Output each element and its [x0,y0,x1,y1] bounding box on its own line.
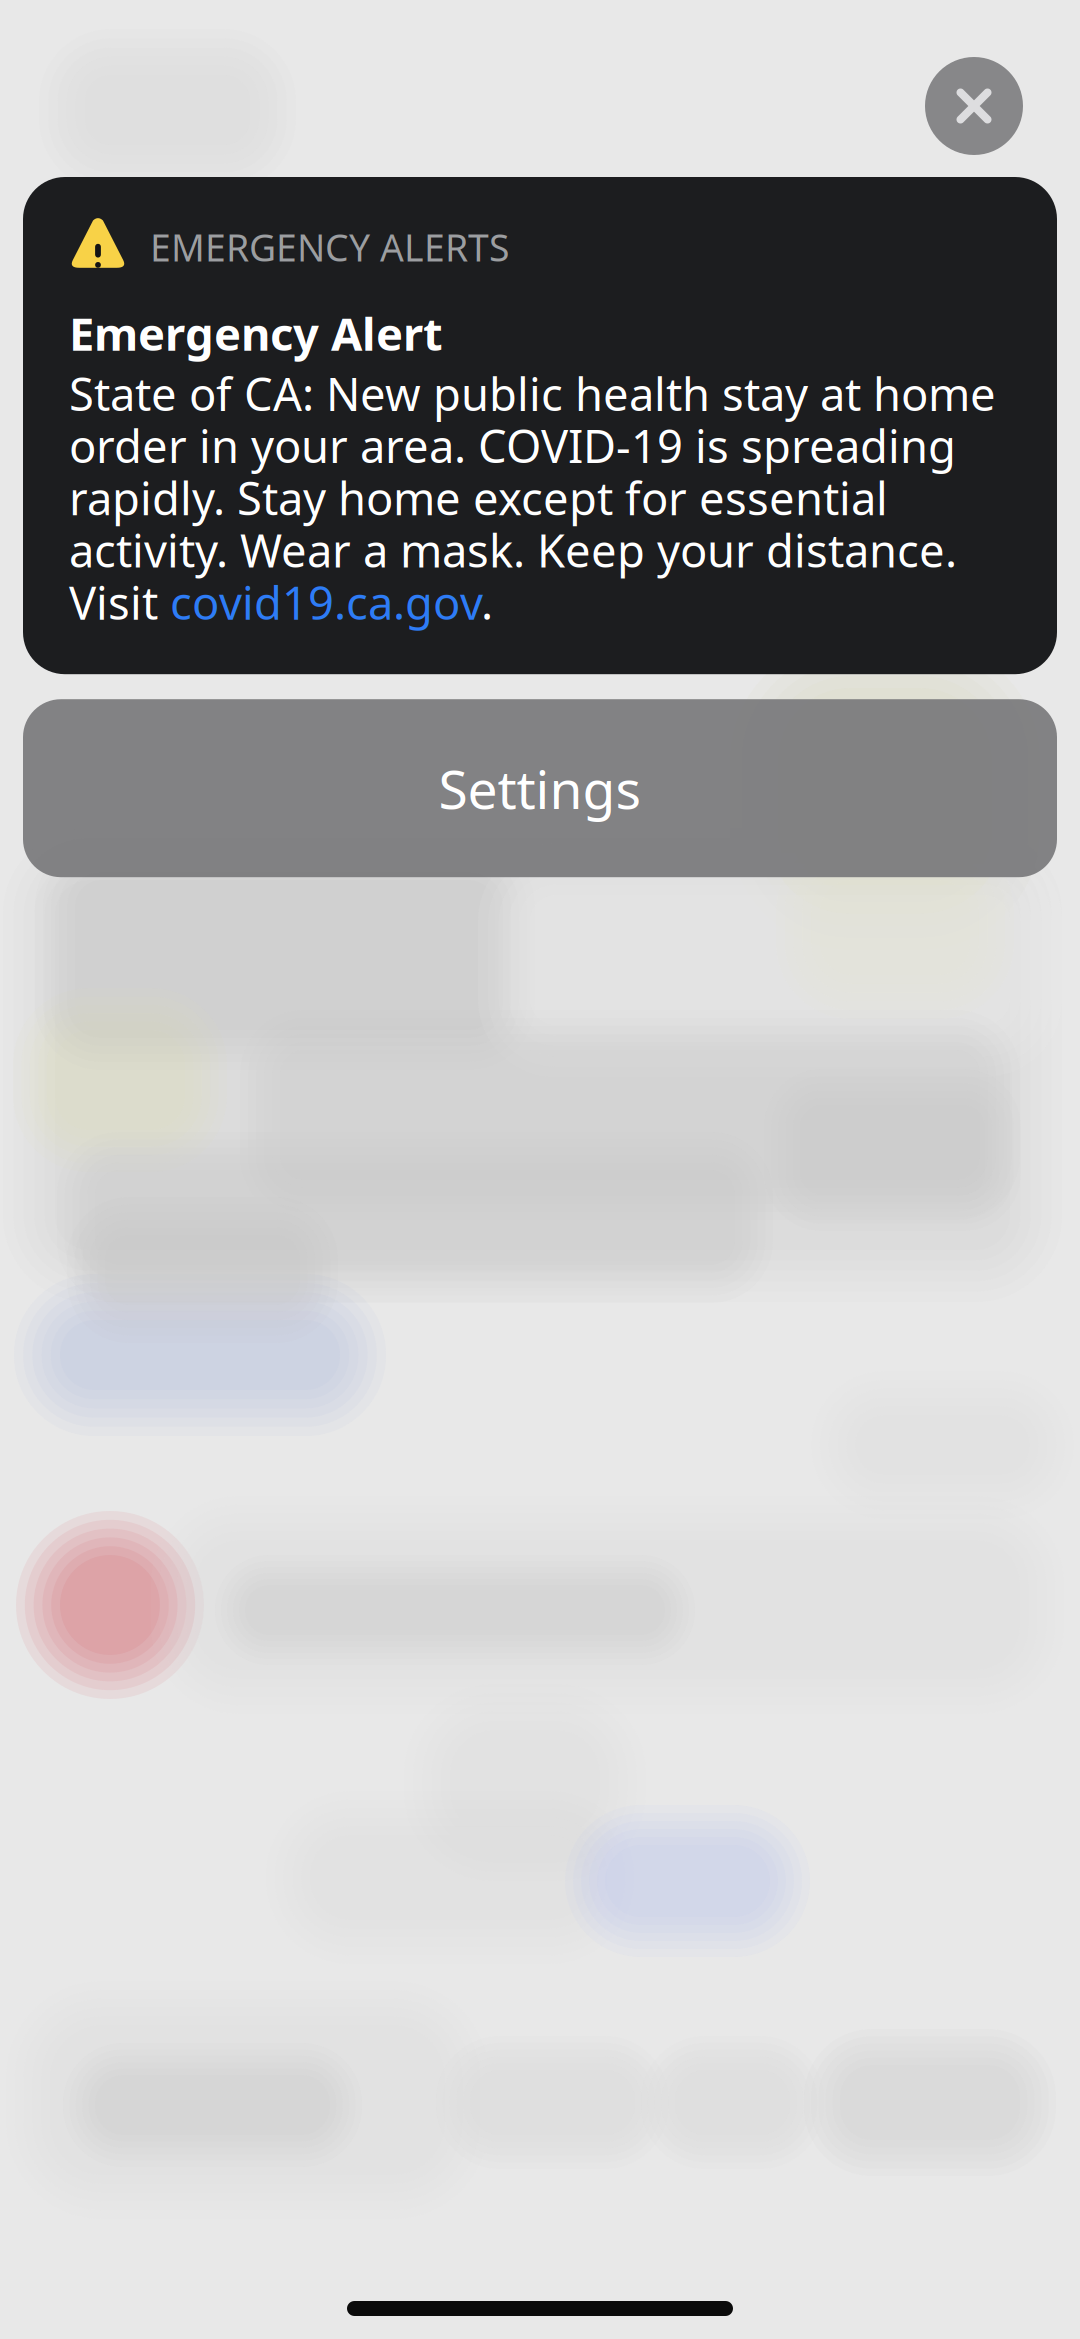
staticText: EMERGENCY ALERTS [150,222,509,272]
staticText: Settings [438,753,641,824]
button[interactable]: EMERGENCY ALERTS [23,177,1057,674]
staticText: State of CA: New public health stay at h… [69,363,996,632]
button[interactable]: Settings [23,699,1057,877]
button[interactable]: Close [925,57,1023,155]
staticText: Emergency Alert [69,303,443,363]
